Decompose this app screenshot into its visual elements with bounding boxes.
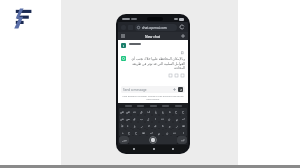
staticText: ن [166,131,169,135]
button[interactable]: Send [178,87,183,92]
button[interactable]: ل [145,115,152,122]
button[interactable]: ث [131,108,138,115]
button[interactable]: لا [145,122,152,129]
button[interactable]: ط [140,129,147,136]
button[interactable]: ب [138,115,145,122]
button[interactable]: ن [166,115,173,122]
staticText: ع [162,110,164,114]
button[interactable]: Refresh [179,24,185,30]
button[interactable]: ة [159,122,166,129]
button[interactable]: New conversation [181,34,185,38]
button[interactable] [150,105,157,107]
button[interactable]: Home [150,145,157,152]
staticText: ح [135,131,138,135]
button[interactable]: س [125,115,131,122]
button[interactable]: ي [131,115,138,122]
button[interactable]: Like [174,73,178,77]
button[interactable]: ء [125,122,131,129]
button[interactable]: م [173,115,180,122]
staticText: ث [133,110,137,114]
button[interactable]: ك [147,129,155,136]
button[interactable] [125,105,132,107]
button[interactable]: ن [163,129,171,136]
staticText: ل [147,117,150,121]
staticText: ا [155,117,156,121]
button[interactable]: ئ [119,122,125,129]
staticText: لا [148,124,150,128]
button[interactable]: ص [125,108,131,115]
staticText: ك [150,131,153,135]
staticText: م [158,131,160,135]
button[interactable]: Tabs [121,25,126,30]
staticText: Free Research Preview. ChatGPT may produ… [121,95,185,101]
button[interactable]: ح [180,108,187,115]
button[interactable]: Send a message [121,86,185,93]
button[interactable]: و [166,122,173,129]
button[interactable]: ك [180,115,187,122]
staticText: خ [175,110,178,114]
staticText: ض [120,110,124,114]
staticText: Send a message [123,88,147,92]
button[interactable]: ش [119,115,125,122]
staticText: chat.openai.com [142,26,167,30]
button[interactable]: د [119,129,126,136]
staticText: ?١٢٣ [122,139,127,142]
staticText: س [126,117,130,121]
staticText: ة [162,124,164,128]
button[interactable]: ت [171,129,179,136]
button[interactable] [162,105,169,107]
button[interactable]: غ [152,108,159,115]
staticText: ؤ [134,124,136,128]
staticText: ز [176,124,178,128]
button[interactable]: ق [138,108,145,115]
button[interactable]: ه [166,108,173,115]
staticText: ش [120,117,124,121]
staticText: ه [169,110,171,114]
button[interactable]: ظ [180,122,187,129]
button[interactable]: Symbols [119,136,129,144]
button[interactable]: Copy [180,50,184,54]
button[interactable]: خ [173,108,180,115]
button[interactable]: ا [118,40,188,48]
button[interactable]: ى [152,122,159,129]
staticText: ى [154,124,157,128]
button[interactable]: Copy [168,73,172,77]
button[interactable]: Recents [169,145,176,152]
button[interactable]: ؤ [131,122,138,129]
button[interactable]: Back [130,145,137,152]
button[interactable]: ف [145,108,152,115]
staticText: ك [182,117,185,121]
staticText: ف [147,110,151,114]
button[interactable] [175,105,182,107]
staticText: ئ [121,124,124,128]
button[interactable]: ض [119,108,125,115]
staticText: ي [133,117,136,121]
staticText: ر [141,124,143,128]
staticText: ج [128,131,131,135]
staticText: ا [183,131,184,135]
button[interactable]: ا [179,129,187,136]
button[interactable]: chat.openai.com [135,24,177,31]
staticText: ا [123,44,124,47]
button[interactable]: ا [152,115,159,122]
button[interactable] [137,105,144,107]
button[interactable]: م [155,129,163,136]
button[interactable]: ت [159,115,166,122]
button[interactable]: Enter [177,136,187,144]
button[interactable]: Space [129,136,177,144]
staticText: العوامل السلبية التي قد تؤثر في طريقة [132,61,185,65]
button[interactable]: Dislike [180,73,184,77]
staticText: ظ [182,124,185,128]
button[interactable]: ر [138,122,145,129]
button[interactable]: ج [126,129,133,136]
staticText: ت [173,131,177,135]
button[interactable]: ح [133,129,140,136]
button[interactable]: وبالإمكان المحافظة عليها خلال تجنب أي [118,56,188,70]
button[interactable]: ع [159,108,166,115]
button[interactable]: ز [173,122,180,129]
staticText: ب [140,117,144,121]
staticText: و [169,124,171,128]
staticText: ق [140,110,143,114]
